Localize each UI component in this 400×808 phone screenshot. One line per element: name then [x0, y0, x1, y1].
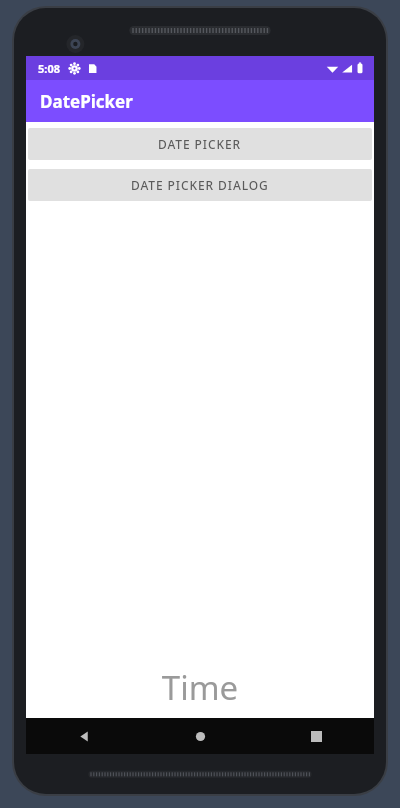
button[interactable]: Recent apps [258, 718, 374, 754]
staticText: DATE PICKER [158, 136, 242, 152]
button[interactable]: Home [142, 718, 258, 754]
staticText: 5:08 [38, 61, 60, 76]
button[interactable]: DATE PICKER DIALOG [28, 169, 372, 201]
button[interactable]: DATE PICKER [28, 128, 372, 160]
staticText: DATE PICKER DIALOG [131, 177, 269, 193]
staticText: DatePicker [40, 90, 133, 113]
staticText: Time [26, 665, 374, 710]
button[interactable]: Back [26, 718, 142, 754]
